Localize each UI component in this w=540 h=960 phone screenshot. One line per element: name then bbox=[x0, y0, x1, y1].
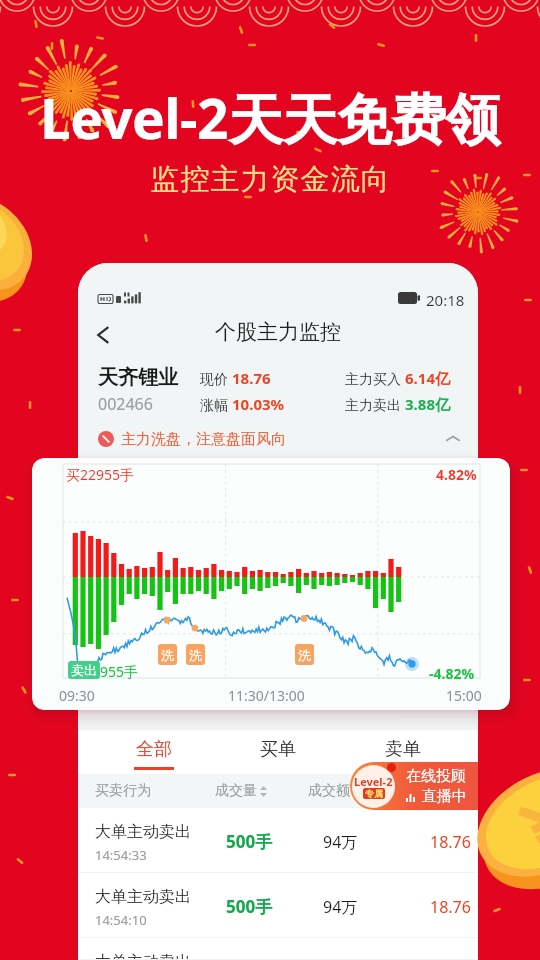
staticText: 94万 bbox=[323, 831, 358, 853]
staticText: 14:54:33 bbox=[95, 846, 147, 864]
staticText: 10.03% bbox=[232, 394, 285, 414]
staticText: 主力卖出 bbox=[345, 395, 405, 414]
staticText: 洗 bbox=[161, 647, 174, 663]
staticText: 涨幅 bbox=[200, 395, 232, 414]
button[interactable]: 大单主动卖出 bbox=[78, 873, 478, 938]
staticText: 直播中 bbox=[422, 787, 467, 806]
staticText: 500手 bbox=[226, 830, 273, 853]
staticText: 个股主力监控 bbox=[215, 319, 341, 345]
button[interactable]: 全部 bbox=[121, 730, 186, 774]
staticText: 18.76 bbox=[232, 368, 271, 388]
staticText: 买22955手 bbox=[66, 465, 135, 484]
staticText: 15:00 bbox=[446, 686, 482, 705]
staticText: 11:30/13:00 bbox=[228, 686, 305, 705]
staticText: 洗 bbox=[189, 647, 202, 663]
staticText: Level-2 bbox=[354, 774, 393, 789]
staticText: 20:18 bbox=[426, 290, 465, 306]
staticText: 全部 bbox=[136, 738, 172, 761]
staticText: 大单主动卖出 bbox=[95, 822, 191, 842]
staticText: 002466 bbox=[98, 393, 153, 415]
button[interactable]: 大单主动卖出 bbox=[78, 938, 478, 960]
staticText: 955手 bbox=[100, 662, 139, 681]
staticText: 大单主动卖出 bbox=[95, 952, 191, 960]
staticText: 4.82% bbox=[436, 465, 477, 484]
staticText: 在线投顾 bbox=[406, 767, 466, 786]
staticText: 18.76 bbox=[430, 896, 471, 918]
staticText: 卖出 bbox=[71, 662, 97, 678]
staticText: 天齐锂业 bbox=[98, 365, 178, 390]
staticText: 洗 bbox=[298, 647, 311, 663]
button[interactable]: Level-2 bbox=[350, 762, 478, 810]
staticText: 14:54:10 bbox=[95, 911, 147, 929]
staticText: 现价 bbox=[200, 369, 232, 388]
staticText: 6.14亿 bbox=[405, 368, 450, 388]
staticText: 买卖行为 bbox=[95, 782, 151, 800]
staticText: 专属 bbox=[365, 788, 383, 799]
staticText: 500手 bbox=[226, 895, 273, 918]
button[interactable]: 卖单 bbox=[370, 730, 435, 774]
staticText: 成交量 bbox=[215, 782, 257, 800]
button[interactable]: Back bbox=[86, 317, 122, 353]
button[interactable]: 大单主动卖出 bbox=[78, 808, 478, 873]
button[interactable]: 买单 bbox=[245, 730, 310, 774]
staticText: 主力洗盘，注意盘面风向 bbox=[121, 430, 286, 449]
staticText: -4.82% bbox=[429, 664, 475, 683]
button[interactable]: 主力洗盘，注意盘面风向 bbox=[98, 424, 462, 454]
staticText: Level-2天天免费领 bbox=[40, 80, 500, 155]
staticText: 主力买入 bbox=[345, 369, 405, 388]
staticText: 监控主力资金流向 bbox=[150, 161, 390, 198]
staticText: 18.76 bbox=[430, 831, 471, 853]
staticText: 大单主动卖出 bbox=[95, 887, 191, 907]
staticText: 09:30 bbox=[59, 686, 95, 705]
staticText: 买单 bbox=[260, 738, 296, 761]
staticText: 价格 bbox=[418, 782, 446, 800]
staticText: 成交额 bbox=[308, 782, 350, 800]
staticText: 卖单 bbox=[385, 738, 421, 761]
staticText: 94万 bbox=[323, 896, 358, 918]
staticText: 3.88亿 bbox=[405, 394, 450, 414]
